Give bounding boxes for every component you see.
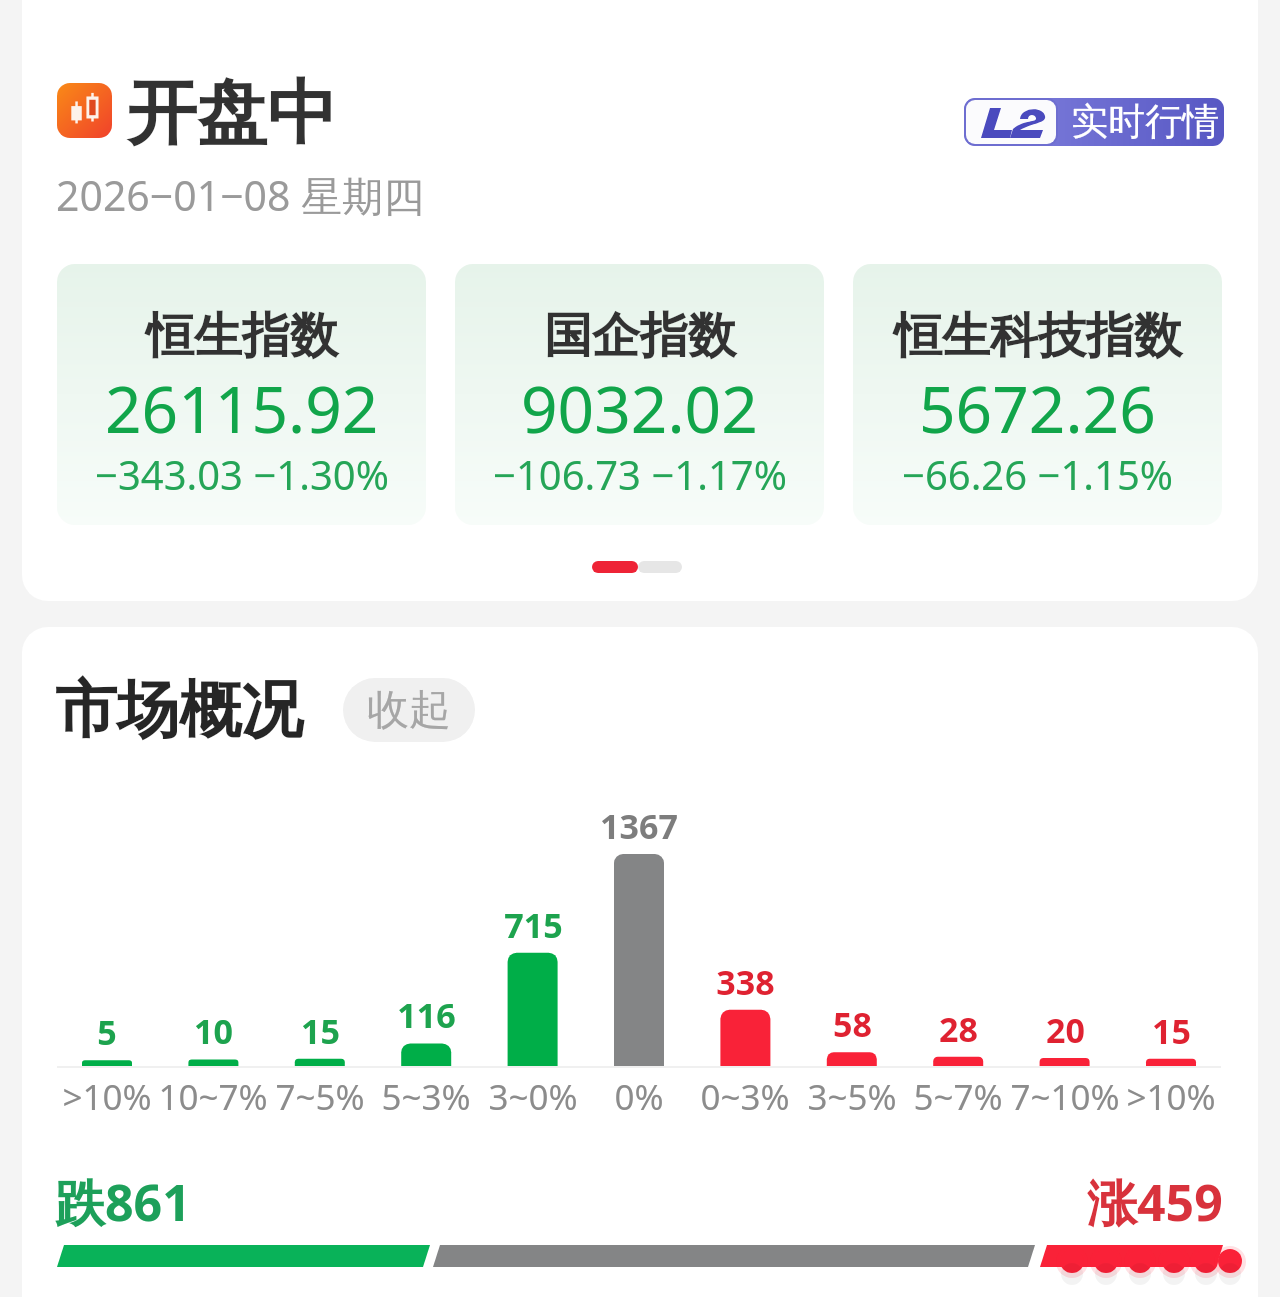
staticText: 5 [97, 1009, 117, 1051]
staticText: 15 [301, 1008, 340, 1050]
button[interactable]: Page 1 [592, 561, 638, 573]
staticText: 1367 [600, 803, 678, 845]
button[interactable]: Page 2 [638, 561, 682, 573]
staticText: 20 [1046, 1007, 1085, 1049]
staticText: 跌861 [55, 1168, 191, 1236]
staticText: 开盘中 [127, 70, 337, 158]
staticText: 0% [614, 1073, 664, 1121]
staticText: 收起 [367, 684, 451, 737]
staticText: 实时行情 [1071, 98, 1219, 145]
staticText: 715 [504, 902, 563, 944]
staticText: 0~3% [700, 1073, 790, 1121]
button[interactable]: 恒生科技指数 [853, 264, 1222, 525]
staticText: 恒生指数 [146, 306, 338, 366]
staticText: 9032.02 [521, 365, 758, 452]
button[interactable]: 收起 [343, 678, 475, 742]
staticText: 市场概况 [55, 671, 303, 749]
staticText: >10% [62, 1073, 152, 1121]
staticText: −343.03 −1.30% [95, 447, 389, 501]
staticText: 5~7% [913, 1073, 1003, 1121]
staticText: 28 [939, 1006, 978, 1048]
staticText: 116 [397, 992, 456, 1034]
button[interactable]: L2 real time quotes [964, 98, 1224, 146]
staticText: 26115.92 [105, 365, 379, 452]
staticText: 7~10% [1010, 1073, 1120, 1121]
staticText: 恒生科技指数 [894, 306, 1182, 366]
staticText: 5672.26 [919, 365, 1156, 452]
staticText: −66.26 −1.15% [902, 447, 1173, 501]
staticText: 5~3% [381, 1073, 471, 1121]
button[interactable]: 恒生指数 [57, 264, 426, 525]
staticText: 3~5% [807, 1073, 897, 1121]
staticText: 338 [716, 959, 775, 1001]
staticText: −106.73 −1.17% [493, 447, 787, 501]
button[interactable]: Market status [57, 83, 112, 138]
staticText: 10 [194, 1008, 233, 1050]
staticText: 3~0% [488, 1073, 578, 1121]
staticText: 7~5% [275, 1073, 365, 1121]
staticText: 15 [1152, 1008, 1191, 1050]
button[interactable]: 国企指数 [455, 264, 824, 525]
staticText: 涨459 [1087, 1168, 1223, 1236]
staticText: >10% [1126, 1073, 1216, 1121]
staticText: 10~7% [158, 1073, 268, 1121]
staticText: 国企指数 [544, 306, 736, 366]
staticText: 2026−01−08 星期四 [56, 167, 425, 223]
staticText: 58 [833, 1001, 872, 1043]
